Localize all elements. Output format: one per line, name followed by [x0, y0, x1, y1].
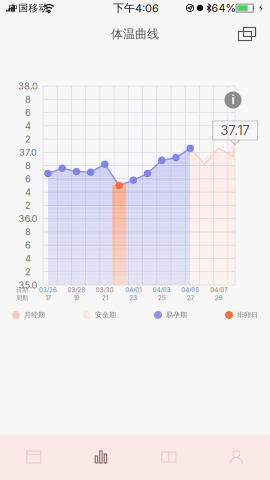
staticText: 04/01 — [125, 286, 141, 294]
button[interactable]: Calendar — [0, 434, 67, 480]
staticText: 04/03 — [153, 286, 171, 294]
staticText: 4 — [25, 186, 31, 198]
staticText: 27 — [187, 294, 194, 302]
staticText: 6 — [25, 107, 31, 118]
staticText: 17 — [45, 294, 50, 302]
staticText: 安全期 — [95, 311, 116, 319]
staticText: 2 — [25, 200, 31, 211]
staticText: 月经期 — [24, 311, 45, 319]
staticText: 8 — [25, 160, 31, 171]
staticText: 36.0 — [18, 213, 37, 224]
staticText: 易孕期 — [166, 311, 187, 319]
staticText: 体温曲线 — [111, 26, 159, 41]
staticText: 中国移动 — [8, 2, 48, 14]
staticText: 4 — [25, 120, 31, 131]
staticText: 19 — [73, 294, 79, 302]
button[interactable]: Profile — [202, 434, 270, 480]
staticText: 64% — [211, 1, 235, 14]
staticText: 2 — [25, 133, 31, 145]
staticText: 6 — [25, 173, 31, 184]
staticText: 8 — [25, 226, 31, 238]
staticText: 8 — [25, 94, 31, 105]
staticText: 23 — [129, 294, 137, 302]
staticText: 38.0 — [18, 80, 38, 92]
staticText: 日期 — [16, 286, 28, 294]
staticText: 周期 — [16, 294, 28, 302]
staticText: 排卵日 — [237, 311, 258, 319]
staticText: 25 — [158, 294, 166, 302]
staticText: 37.0 — [19, 147, 37, 158]
button[interactable]: Calendar — [232, 21, 262, 47]
staticText: 21 — [102, 294, 108, 302]
staticText: 37.17 — [220, 123, 249, 138]
staticText: 04/07 — [210, 286, 227, 294]
staticText: 03/26 — [39, 286, 57, 294]
button[interactable]: Info — [222, 89, 244, 111]
staticText: 35.0 — [18, 279, 37, 291]
button[interactable]: Articles — [135, 434, 202, 480]
staticText: i — [231, 93, 234, 107]
staticText: 6 — [25, 240, 31, 251]
staticText: 下午4:06 — [113, 1, 159, 15]
button[interactable]: Chart — [67, 434, 135, 480]
staticText: 04/05 — [181, 286, 199, 294]
staticText: 03/28 — [67, 286, 85, 294]
staticText: 03/30 — [96, 286, 114, 294]
staticText: 2 — [25, 266, 31, 277]
staticText: 29 — [215, 294, 223, 302]
staticText: 4 — [25, 253, 31, 264]
